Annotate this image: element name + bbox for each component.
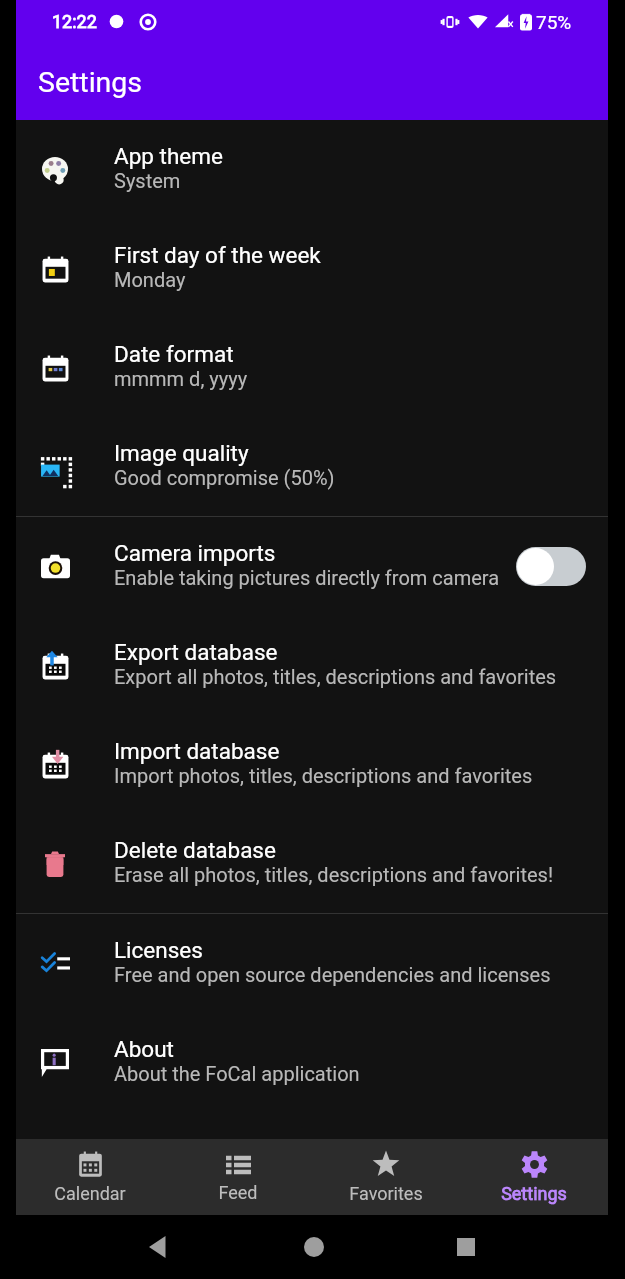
button[interactable]: Date format bbox=[16, 318, 608, 417]
staticText: Import photos, titles, descriptions and … bbox=[114, 764, 533, 787]
staticText: Import database bbox=[114, 738, 280, 764]
staticText: App theme bbox=[114, 143, 223, 169]
staticText: Favorites bbox=[349, 1183, 423, 1204]
staticText: Settings bbox=[501, 1183, 567, 1204]
staticText: Licenses bbox=[114, 937, 203, 963]
staticText: About the FoCal application bbox=[114, 1062, 360, 1085]
staticText: Enable taking pictures directly from cam… bbox=[114, 566, 500, 589]
staticText: About bbox=[114, 1036, 174, 1062]
button[interactable]: Feed bbox=[164, 1152, 312, 1203]
button[interactable]: App theme bbox=[16, 120, 608, 219]
staticText: 12:22 bbox=[52, 11, 97, 32]
button[interactable]: Camera imports bbox=[16, 517, 608, 616]
button[interactable]: Settings bbox=[460, 1151, 608, 1204]
staticText: Calendar bbox=[54, 1183, 126, 1204]
staticText: Image quality bbox=[114, 440, 249, 466]
staticText: mmmm d, yyyy bbox=[114, 367, 248, 390]
button[interactable]: First day of the week bbox=[16, 219, 608, 318]
button[interactable]: Export database bbox=[16, 616, 608, 715]
staticText: Camera imports bbox=[114, 540, 276, 566]
staticText: Monday bbox=[114, 268, 186, 291]
staticText: Feed bbox=[218, 1182, 258, 1203]
button[interactable]: Import database bbox=[16, 715, 608, 814]
staticText: Export database bbox=[114, 639, 278, 665]
button[interactable]: Favorites bbox=[312, 1150, 460, 1204]
staticText: 75% bbox=[536, 11, 572, 33]
button[interactable]: Licenses bbox=[16, 914, 608, 1013]
staticText: Erase all photos, titles, descriptions a… bbox=[114, 863, 554, 886]
staticText: Free and open source dependencies and li… bbox=[114, 963, 551, 986]
staticText: Good compromise (50%) bbox=[114, 466, 335, 489]
staticText: Delete database bbox=[114, 837, 276, 863]
staticText: First day of the week bbox=[114, 242, 321, 268]
staticText: System bbox=[114, 169, 181, 192]
button[interactable]: Image quality bbox=[16, 417, 608, 516]
button[interactable]: Delete database bbox=[16, 814, 608, 913]
staticText: Settings bbox=[38, 66, 143, 99]
staticText: Export all photos, titles, descriptions … bbox=[114, 665, 557, 688]
staticText: Date format bbox=[114, 341, 234, 367]
button[interactable]: About bbox=[16, 1013, 608, 1112]
button[interactable]: Camera imports toggle bbox=[516, 547, 586, 586]
button[interactable]: Calendar bbox=[16, 1151, 164, 1204]
